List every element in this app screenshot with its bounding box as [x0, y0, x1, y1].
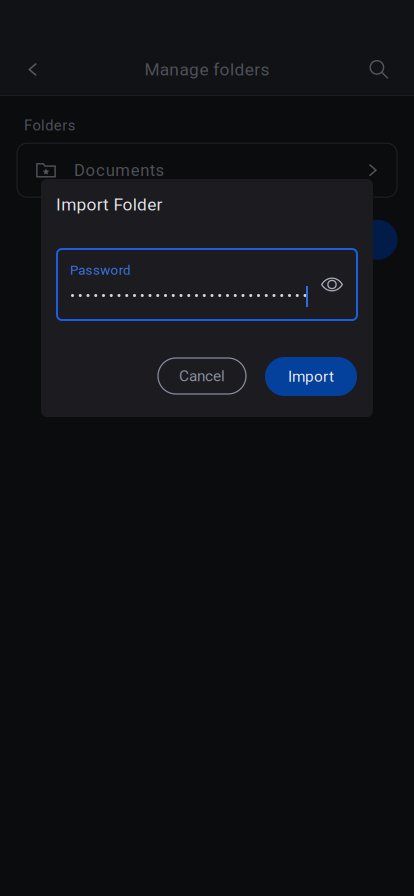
staticText: Documents	[74, 160, 164, 180]
staticText: Manage folders	[144, 59, 270, 80]
staticText: Folders	[24, 117, 76, 134]
button[interactable]: Documents	[0, 134, 414, 197]
staticText: Cancel	[179, 367, 225, 385]
staticText: Import	[288, 367, 334, 385]
staticText: Import Folder	[56, 194, 162, 215]
staticText: Password	[70, 262, 131, 278]
button[interactable]: Cancel	[158, 358, 246, 394]
button[interactable]: Show password	[312, 264, 352, 304]
button[interactable]: Import	[265, 357, 357, 396]
button[interactable]: Search	[359, 47, 403, 91]
button[interactable]: Back	[11, 47, 55, 91]
